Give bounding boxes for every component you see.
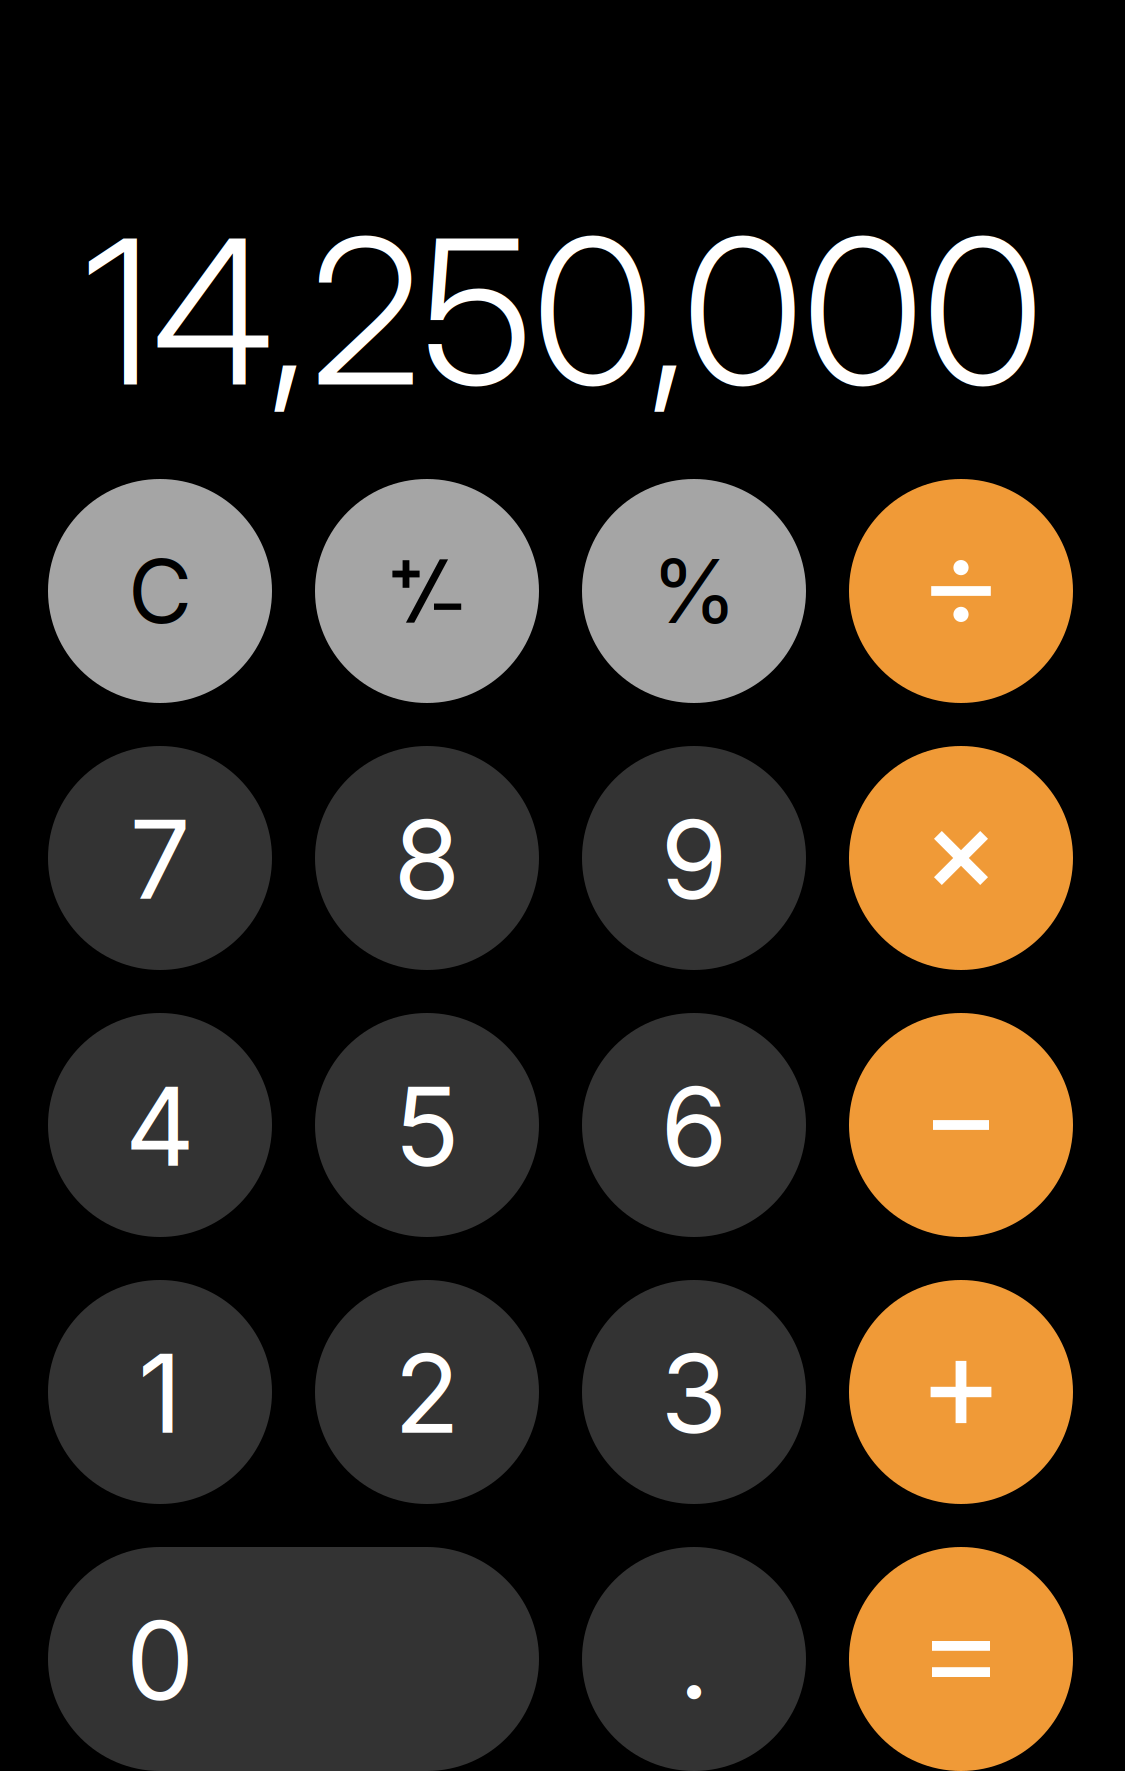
button[interactable]: 1 (48, 1280, 272, 1504)
staticText: 9 (660, 794, 727, 925)
button[interactable]: 3 (582, 1280, 806, 1504)
button[interactable]: Equals (849, 1547, 1073, 1771)
staticText: 2 (394, 1328, 460, 1459)
button[interactable]: Multiply (849, 746, 1073, 970)
button[interactable]: 5 (315, 1013, 539, 1237)
staticText: 6 (660, 1061, 727, 1192)
button[interactable]: Subtract (849, 1013, 1073, 1237)
button[interactable]: % (582, 479, 806, 703)
button[interactable]: Add (849, 1280, 1073, 1504)
button[interactable]: 9 (582, 746, 806, 970)
button[interactable]: Toggle sign (315, 479, 539, 703)
staticText: 14,250,000 (83, 189, 1043, 433)
staticText: . (678, 1594, 709, 1724)
button[interactable]: Divide (849, 479, 1073, 703)
button[interactable]: 0 (48, 1547, 539, 1771)
staticText: 4 (125, 1061, 195, 1192)
staticText: 8 (393, 794, 460, 925)
staticText: 1 (138, 1328, 182, 1459)
button[interactable]: C (48, 479, 272, 703)
staticText: % (651, 538, 737, 644)
staticText: 3 (660, 1328, 727, 1459)
button[interactable]: 2 (315, 1280, 539, 1504)
button[interactable]: . (582, 1547, 806, 1771)
button[interactable]: 8 (315, 746, 539, 970)
button[interactable]: 7 (48, 746, 272, 970)
staticText: 0 (126, 1595, 194, 1726)
staticText: 5 (394, 1061, 460, 1192)
staticText: 7 (129, 794, 190, 925)
staticText: C (128, 538, 192, 644)
button[interactable]: 4 (48, 1013, 272, 1237)
button[interactable]: 6 (582, 1013, 806, 1237)
